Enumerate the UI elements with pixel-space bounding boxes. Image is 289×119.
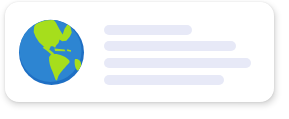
button[interactable]: Globe xyxy=(5,2,274,102)
other: Globe xyxy=(19,20,84,85)
